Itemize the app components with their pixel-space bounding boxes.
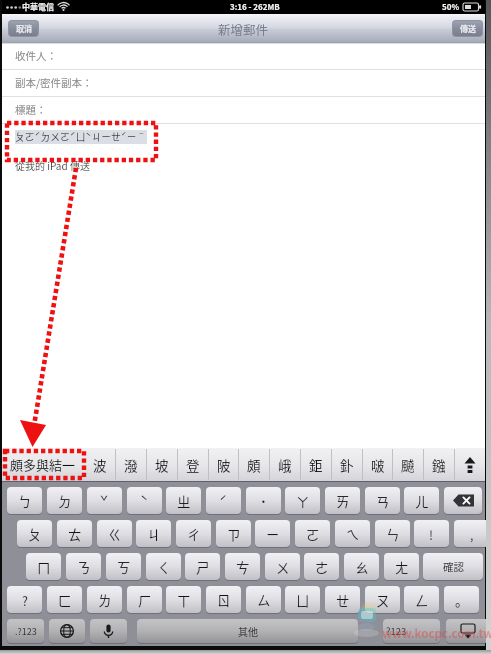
button[interactable]: 確認 <box>423 553 483 580</box>
staticText: 陂 <box>217 455 231 475</box>
button[interactable]: 。 <box>444 586 479 613</box>
button[interactable]: 峨 <box>269 448 300 481</box>
button[interactable]: ㄒ <box>166 586 201 613</box>
staticText: ㄢ <box>376 491 390 511</box>
button[interactable]: ㄩ <box>285 586 320 613</box>
staticText: ㄅ <box>18 491 32 511</box>
staticText: ˙ <box>260 491 267 511</box>
staticText: ㄌ <box>98 590 112 610</box>
button[interactable]: ㄤ <box>384 553 419 580</box>
button[interactable]: ㄙ <box>246 586 281 613</box>
button[interactable]: More candidates <box>454 448 485 481</box>
button[interactable]: ㄧ <box>255 520 290 547</box>
staticText: 收件人： <box>15 48 57 63</box>
button[interactable]: ㄗ <box>216 520 251 547</box>
button[interactable]: ㄓ <box>166 487 201 514</box>
staticText: ㄆ <box>28 524 42 544</box>
button[interactable]: ㄡ <box>365 586 400 613</box>
button[interactable]: 傳送 <box>453 21 482 36</box>
button[interactable]: ㄠ <box>344 553 379 580</box>
button[interactable]: ㄆ <box>17 520 52 547</box>
button[interactable]: 波 <box>84 448 115 481</box>
button[interactable]: 登 <box>177 448 208 481</box>
button[interactable]: ㄝ <box>325 586 360 613</box>
button[interactable]: ㄊ <box>57 520 92 547</box>
button[interactable]: ? <box>7 586 42 613</box>
button[interactable]: ㄦ <box>404 487 439 514</box>
button[interactable]: ㄣ <box>375 520 410 547</box>
button[interactable]: ㄉ <box>47 487 82 514</box>
staticText: 釙 <box>340 455 354 475</box>
button[interactable]: ㄍ <box>97 520 132 547</box>
button[interactable]: 潑 <box>115 448 146 481</box>
button[interactable]: ㄞ <box>325 487 360 514</box>
staticText: 中華電信 <box>22 1 54 13</box>
button[interactable]: ㄈ <box>47 586 82 613</box>
button[interactable]: ˋ <box>127 487 162 514</box>
button[interactable]: ㄜ <box>304 553 339 580</box>
button[interactable]: 頗多與結一 <box>2 448 84 481</box>
button[interactable]: ㄟ <box>335 520 370 547</box>
button[interactable]: ! <box>414 520 449 547</box>
staticText: 潑 <box>124 455 138 475</box>
staticText: ㄠ <box>355 557 369 577</box>
staticText: , <box>470 525 474 543</box>
button[interactable]: ㄑ <box>146 553 181 580</box>
button[interactable]: ˊ <box>206 487 241 514</box>
staticText: 。 <box>455 590 469 610</box>
staticText: 飇 <box>401 455 415 475</box>
button[interactable]: 陂 <box>208 448 239 481</box>
staticText: ㄡ <box>376 590 390 610</box>
button[interactable]: 飇 <box>392 448 423 481</box>
button[interactable]: 其他 <box>137 619 358 643</box>
staticText: ㄐ <box>147 524 161 544</box>
staticText: ㄘ <box>236 557 250 577</box>
button[interactable]: .?123 <box>7 619 44 643</box>
button[interactable]: Hide keyboard <box>446 619 490 643</box>
staticText: .?123 <box>15 625 37 638</box>
button[interactable]: 坡 <box>146 448 177 481</box>
button[interactable]: , <box>454 520 489 547</box>
button[interactable]: 取消 <box>9 21 38 36</box>
button[interactable]: ㄨ <box>265 553 300 580</box>
button[interactable]: 鏹 <box>423 448 454 481</box>
button[interactable]: ㄛ <box>295 520 330 547</box>
staticText: ㄚ <box>296 491 310 511</box>
staticText: ˇ <box>100 491 109 511</box>
button[interactable]: 啵 <box>362 448 393 481</box>
staticText: 鏹 <box>432 455 446 475</box>
button[interactable]: ㄎ <box>106 553 141 580</box>
button[interactable]: ㄇ <box>26 553 61 580</box>
staticText: ? <box>22 591 28 609</box>
button[interactable]: Change keyboard <box>49 619 85 643</box>
staticText: 標題： <box>15 102 47 117</box>
staticText: ㄋ <box>77 557 91 577</box>
staticText: 頗 <box>247 455 261 475</box>
button[interactable]: ㄕ <box>185 553 220 580</box>
button[interactable]: 鉅 <box>300 448 331 481</box>
button[interactable]: ˙ <box>246 487 281 514</box>
button[interactable]: ㄥ <box>404 586 439 613</box>
button[interactable]: ㄐ <box>136 520 171 547</box>
staticText: ㄦ <box>415 491 429 511</box>
button[interactable]: ㄏ <box>127 586 162 613</box>
button[interactable]: Backspace <box>444 487 482 514</box>
button[interactable]: 頗 <box>238 448 269 481</box>
button[interactable]: ㄘ <box>225 553 260 580</box>
button[interactable]: ㄢ <box>365 487 400 514</box>
button[interactable]: Dictation <box>90 619 127 643</box>
button[interactable]: ㄔ <box>176 520 211 547</box>
staticText: 鉅 <box>309 455 323 475</box>
staticText: ㄗ <box>227 524 241 544</box>
button[interactable]: ㄋ <box>66 553 101 580</box>
button[interactable]: ㄅ <box>7 487 42 514</box>
button[interactable]: 釙 <box>331 448 362 481</box>
button[interactable]: ㄚ <box>285 487 320 514</box>
staticText: 3:16 - 262MB <box>230 1 280 13</box>
staticText: 從我的 iPad 傳送 <box>15 158 90 172</box>
button[interactable]: ?123 <box>383 619 440 643</box>
button[interactable]: ㄖ <box>206 586 241 613</box>
button[interactable]: ˇ <box>87 487 122 514</box>
button[interactable]: ㄌ <box>87 586 122 613</box>
staticText: ㄞ <box>336 491 350 511</box>
